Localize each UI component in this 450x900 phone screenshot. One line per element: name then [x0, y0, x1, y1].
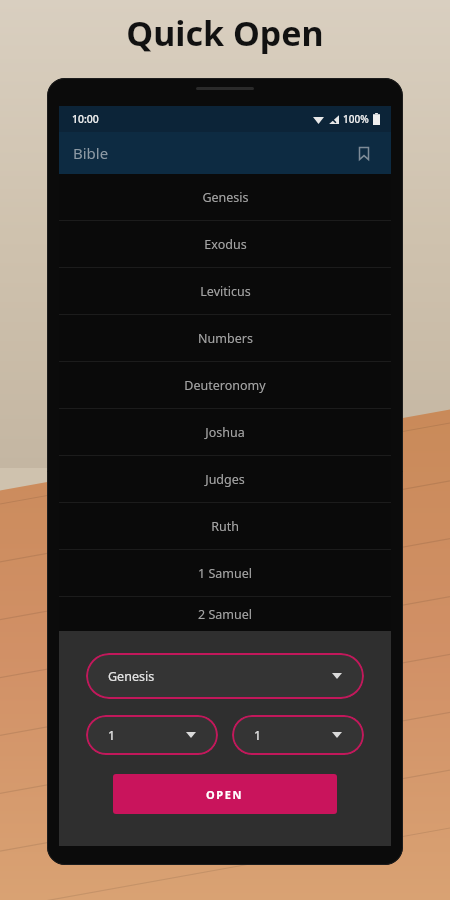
staticText: Genesis: [108, 668, 155, 685]
button[interactable]: Judges: [59, 456, 391, 503]
staticText: Judges: [205, 471, 245, 488]
staticText: Leviticus: [200, 283, 251, 300]
staticText: 100%: [343, 112, 369, 126]
staticText: 1: [108, 727, 116, 744]
staticText: Ruth: [211, 518, 239, 535]
button[interactable]: 1 Samuel: [59, 550, 391, 597]
button[interactable]: Numbers: [59, 315, 391, 362]
staticText: 2 Samuel: [198, 606, 252, 623]
staticText: Quick Open: [126, 10, 324, 56]
button[interactable]: OPEN: [113, 774, 337, 814]
button[interactable]: Ruth: [59, 503, 391, 550]
staticText: Deuteronomy: [184, 377, 266, 394]
button[interactable]: Bookmarks: [347, 136, 381, 170]
staticText: OPEN: [206, 787, 244, 802]
staticText: Joshua: [205, 424, 245, 441]
staticText: Numbers: [198, 330, 253, 347]
staticText: 1 Samuel: [198, 565, 252, 582]
button[interactable]: Exodus: [59, 221, 391, 268]
button[interactable]: Select chapter: [86, 715, 218, 755]
button[interactable]: Deuteronomy: [59, 362, 391, 409]
button[interactable]: Select verse: [232, 715, 364, 755]
staticText: 1: [254, 727, 262, 744]
button[interactable]: Joshua: [59, 409, 391, 456]
staticText: Bible: [73, 143, 109, 163]
staticText: Exodus: [204, 236, 247, 253]
button[interactable]: Genesis: [59, 174, 391, 221]
staticText: 10:00: [72, 112, 99, 126]
button[interactable]: Select book: [86, 653, 364, 699]
button[interactable]: 2 Samuel: [59, 597, 391, 631]
staticText: Genesis: [202, 189, 249, 206]
button[interactable]: Leviticus: [59, 268, 391, 315]
